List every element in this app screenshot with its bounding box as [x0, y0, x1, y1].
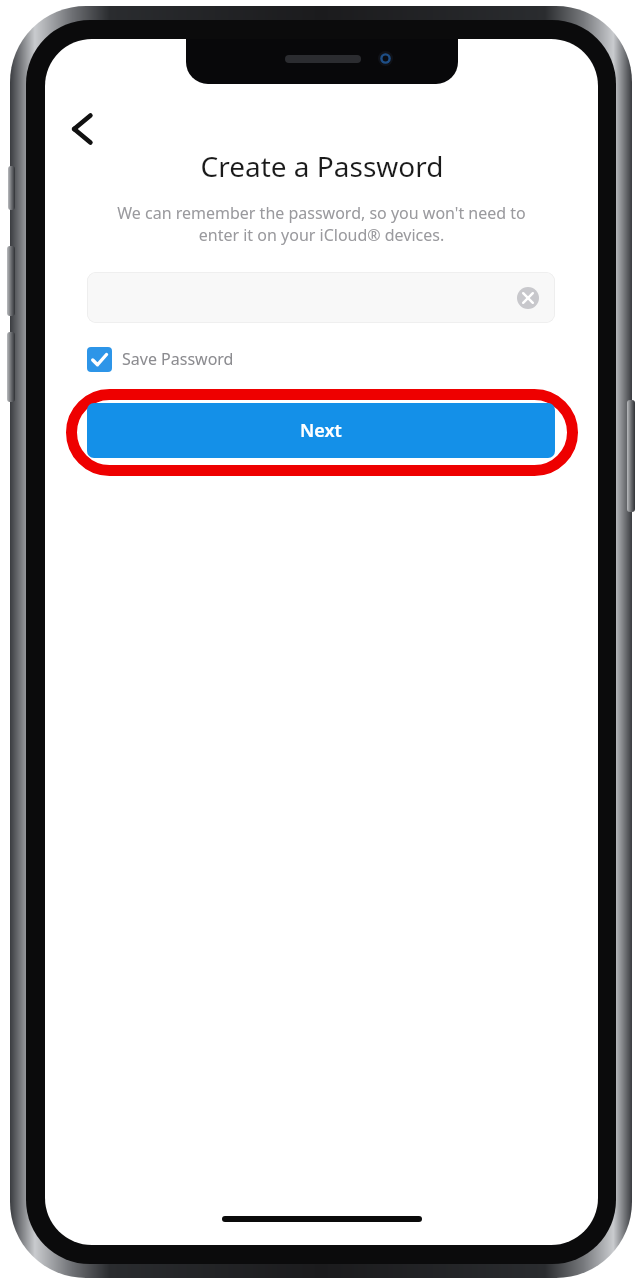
staticText: Next	[300, 418, 342, 443]
button[interactable]: Save Password	[87, 344, 234, 374]
button[interactable]: Back	[54, 102, 108, 156]
staticText: We can remember the password, so you won…	[89, 202, 554, 246]
button[interactable]: Password field	[87, 272, 555, 323]
button[interactable]: Clear text	[517, 287, 539, 309]
staticText: Save Password	[122, 348, 234, 370]
button[interactable]: Next	[87, 403, 555, 458]
staticText: Create a Password	[200, 147, 444, 185]
